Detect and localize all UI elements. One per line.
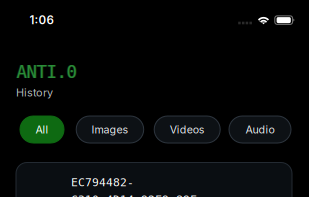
staticText: 1:06: [29, 13, 53, 27]
button[interactable]: All: [20, 116, 64, 143]
staticText: ANTI.0: [17, 62, 77, 82]
staticText: Images: [91, 123, 128, 136]
staticText: Videos: [170, 123, 205, 136]
button[interactable]: Videos: [154, 116, 220, 143]
button[interactable]: EC794482-: [16, 162, 292, 197]
staticText: C310-4D14-92F9-89F: [71, 193, 197, 197]
staticText: EC794482-: [71, 176, 134, 189]
staticText: ANTI.0: [16, 62, 76, 82]
staticText: Audio: [245, 123, 274, 136]
button[interactable]: Audio: [229, 116, 291, 143]
button[interactable]: Images: [76, 116, 144, 143]
staticText: All: [35, 123, 48, 136]
staticText: History: [16, 86, 53, 99]
staticText: ANTI.0: [16, 62, 76, 82]
